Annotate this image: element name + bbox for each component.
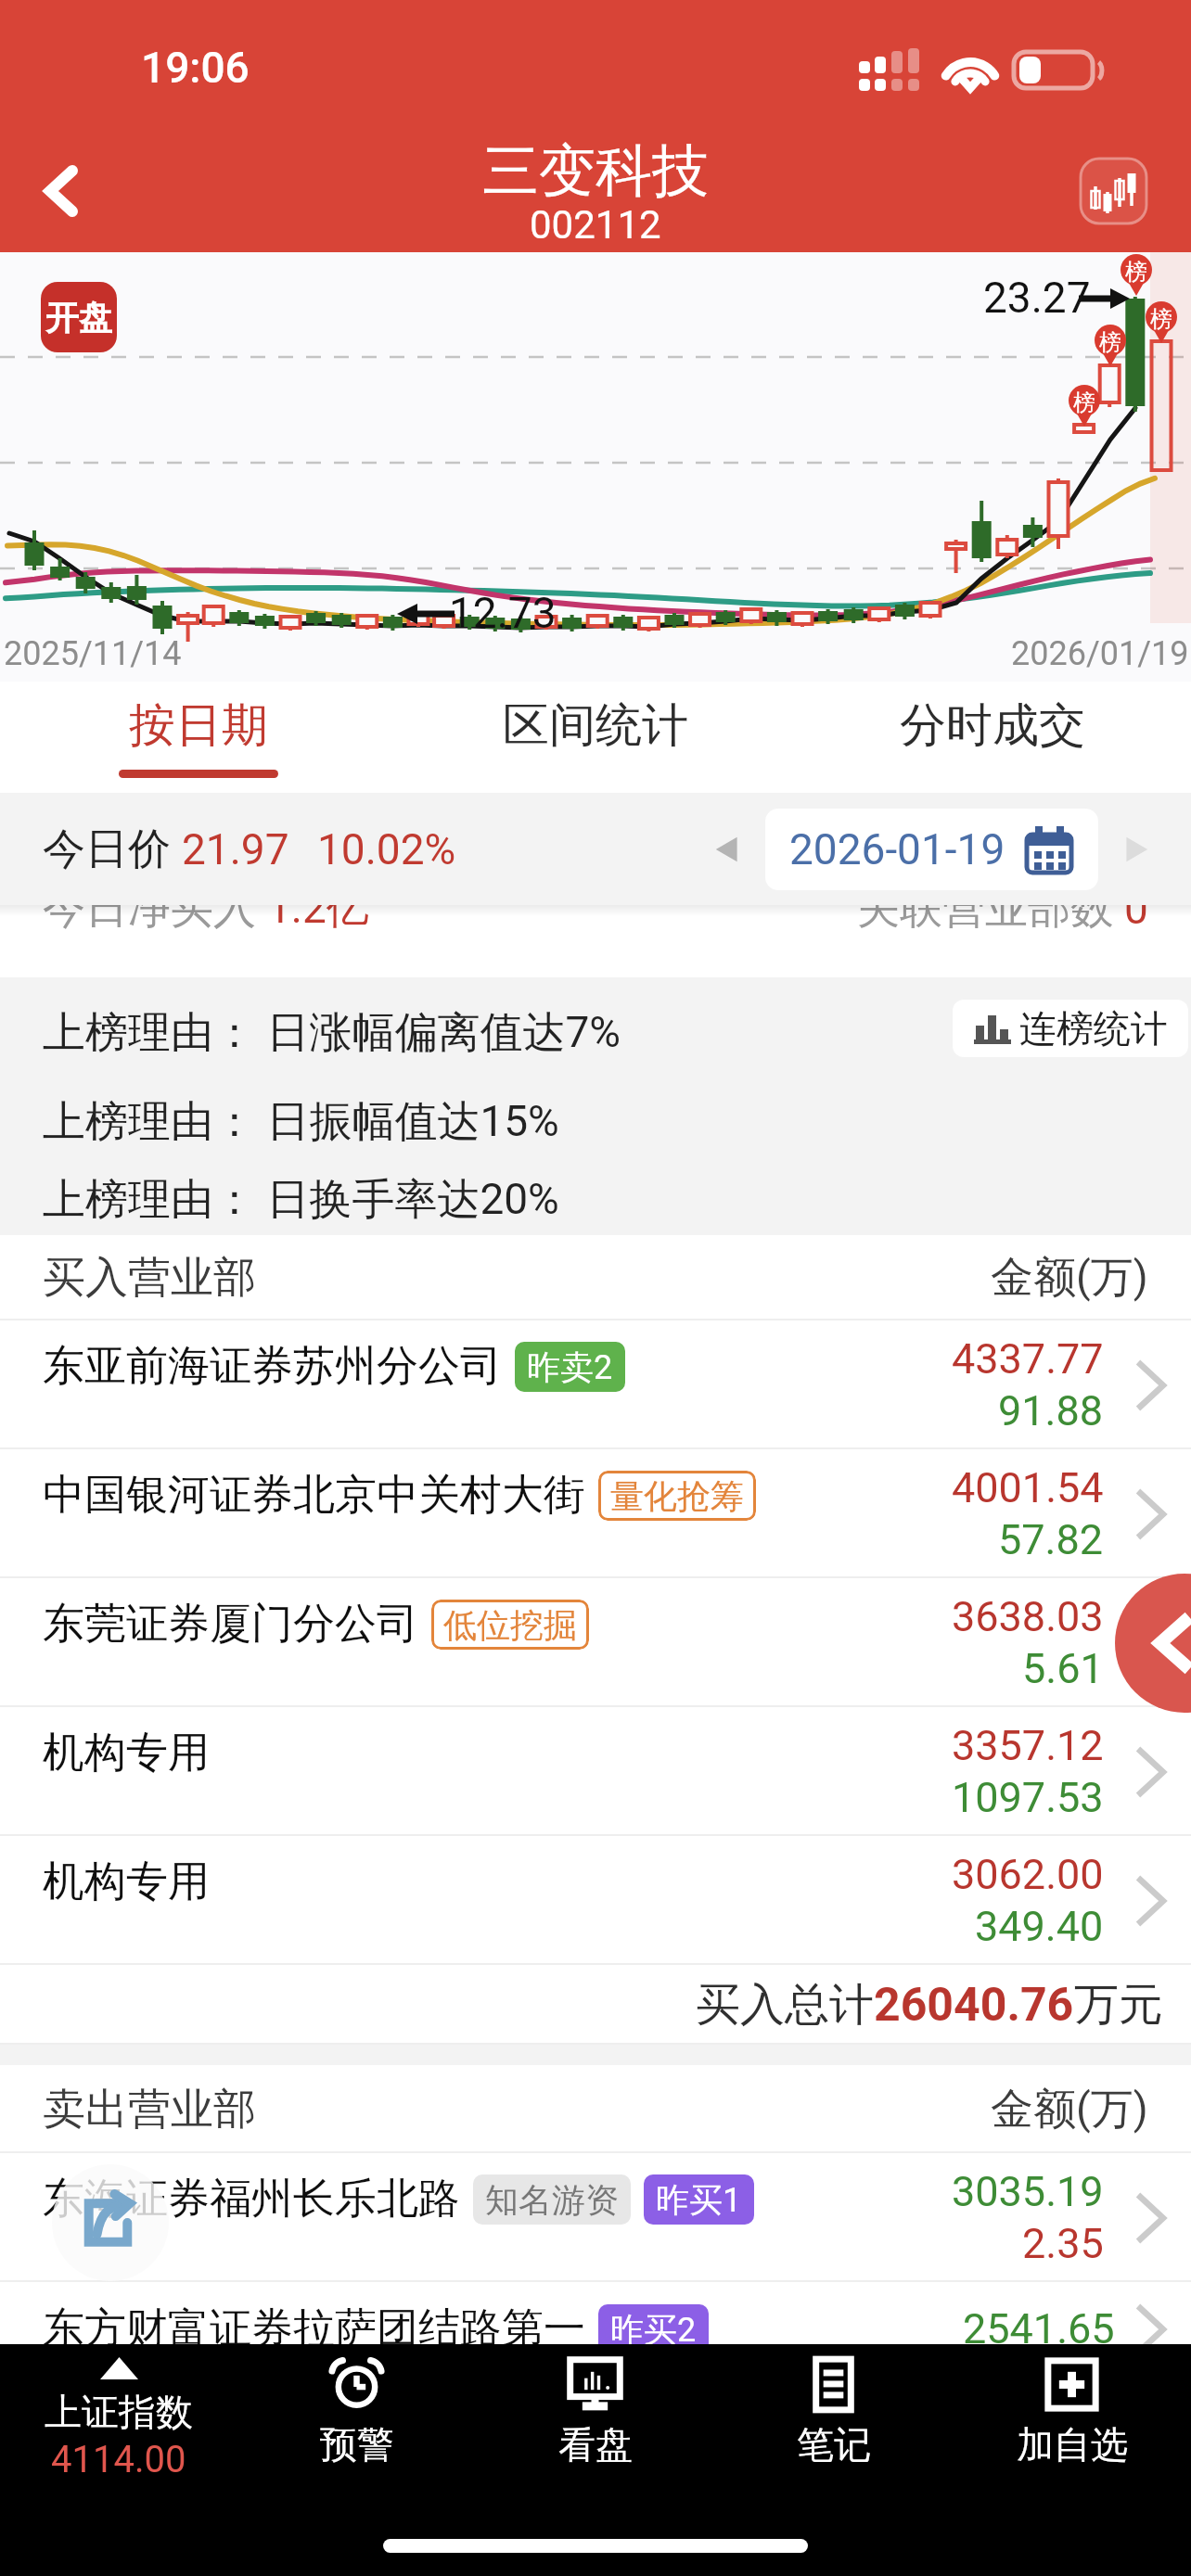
staticText: 买入营业部	[43, 1251, 256, 1305]
staticText: 昨买2	[610, 2309, 697, 2351]
staticText: 2.35	[1022, 2219, 1104, 2268]
staticText: 东方财富证券拉萨团结路第一	[43, 2302, 585, 2355]
staticText: 3357.12	[952, 1721, 1104, 1770]
staticText: 开盘	[45, 297, 112, 338]
staticText: 23.27	[983, 273, 1091, 323]
staticText: 2026/01/19	[1011, 634, 1189, 673]
staticText: 1097.53	[952, 1773, 1104, 1822]
staticText: 3035.19	[952, 2167, 1104, 2216]
staticText: 榜	[1073, 389, 1095, 416]
button[interactable]: 机构专用	[0, 1836, 1191, 1965]
staticText: 笔记	[797, 2421, 871, 2468]
staticText: 万元	[1074, 1977, 1163, 2033]
staticText: 昨卖2	[527, 1346, 613, 1388]
staticText: 榜	[1099, 328, 1121, 356]
staticText: 上榜理由： 日涨幅偏离值达7%	[43, 1006, 621, 1060]
staticText: 4337.77	[952, 1334, 1104, 1384]
staticText: 今日价	[43, 823, 182, 876]
staticText: 中国银河证券北京中关村大街	[43, 1469, 585, 1522]
staticText: 低位挖掘	[443, 1604, 577, 1646]
staticText: 昨买1	[656, 2179, 742, 2221]
button[interactable]: 连榜统计	[953, 1000, 1188, 1057]
staticText: 按日期	[129, 696, 268, 755]
button[interactable]: K line chart	[1080, 158, 1147, 224]
button[interactable]: 机构专用	[0, 1707, 1191, 1836]
staticText: 卖出营业部	[43, 2083, 256, 2136]
staticText: 21.97	[182, 824, 289, 874]
staticText: 预警	[320, 2421, 394, 2468]
button[interactable]: 看盘	[476, 2344, 714, 2530]
staticText: 买入总计	[696, 1977, 874, 2033]
staticText: 349.40	[975, 1902, 1104, 1951]
staticText: 机构专用	[43, 1855, 210, 1908]
button[interactable]: 东海证券福州长乐北路	[0, 2153, 1191, 2282]
staticText: 3062.00	[952, 1850, 1104, 1899]
button[interactable]: 东莞证券厦门分公司	[0, 1578, 1191, 1707]
staticText: 三变科技	[482, 135, 709, 207]
staticText: 2026-01-19	[789, 824, 1005, 874]
staticText: 上榜理由： 日换手率达20%	[43, 1173, 559, 1227]
staticText: 2025/11/14	[4, 634, 182, 673]
staticText: 4001.54	[952, 1463, 1104, 1512]
button[interactable]: Share	[52, 2164, 169, 2281]
staticText: 10.02%	[317, 824, 456, 874]
staticText: 1.2亿	[267, 882, 369, 936]
staticText: 连榜统计	[1019, 1005, 1168, 1052]
button[interactable]: 2026-01-19	[765, 809, 1098, 890]
staticText: 机构专用	[43, 1727, 210, 1779]
staticText: 金额(万)	[991, 1251, 1148, 1305]
button[interactable]: Collapse panel	[1115, 1574, 1191, 1713]
staticText: 榜	[1125, 258, 1147, 286]
staticText: 12.73	[449, 588, 557, 638]
button[interactable]: Back	[11, 139, 113, 243]
button[interactable]: 上证指数	[0, 2344, 237, 2530]
staticText: 分时成交	[900, 696, 1085, 755]
staticText: 上榜理由： 日振幅值达15%	[43, 1095, 559, 1149]
staticText: 4114.00	[51, 2438, 186, 2481]
staticText: 量化抢筹	[610, 1475, 744, 1517]
staticText: 5.61	[1022, 1644, 1104, 1693]
staticText: 2541.65	[963, 2304, 1115, 2353]
button[interactable]: 预警	[237, 2344, 476, 2530]
staticText: 东亚前海证券苏州分公司	[43, 1340, 502, 1393]
staticText: 今日净买入	[43, 882, 267, 936]
staticText: 关联营业部数	[857, 882, 1124, 936]
staticText: 91.88	[998, 1386, 1104, 1435]
staticText: 26040.76	[874, 1978, 1074, 2033]
button[interactable]: 按日期	[0, 682, 397, 793]
staticText: 区间统计	[503, 696, 688, 755]
staticText: 东莞证券厦门分公司	[43, 1598, 418, 1651]
button[interactable]: Previous day	[700, 822, 756, 877]
staticText: 002112	[530, 202, 661, 248]
button[interactable]: 东亚前海证券苏州分公司	[0, 1320, 1191, 1449]
staticText: 东海证券福州长乐北路	[43, 2173, 460, 2225]
staticText: 看盘	[558, 2421, 633, 2468]
button[interactable]: 加自选	[953, 2344, 1191, 2530]
staticText: 知名游资	[485, 2179, 619, 2221]
staticText: 上证指数	[45, 2389, 193, 2435]
staticText: 0	[1124, 884, 1148, 934]
staticText: 榜	[1150, 305, 1172, 333]
staticText: 19:06	[141, 43, 250, 93]
button[interactable]: 分时成交	[794, 682, 1191, 793]
button[interactable]: 区间统计	[397, 682, 794, 793]
button[interactable]: 中国银河证券北京中关村大街	[0, 1449, 1191, 1578]
staticText: 3638.03	[952, 1592, 1104, 1641]
button[interactable]: 笔记	[714, 2344, 953, 2530]
button[interactable]: Next day	[1108, 822, 1163, 877]
staticText: 57.82	[998, 1515, 1104, 1564]
staticText: 金额(万)	[991, 2083, 1148, 2136]
staticText: 加自选	[1017, 2421, 1128, 2468]
